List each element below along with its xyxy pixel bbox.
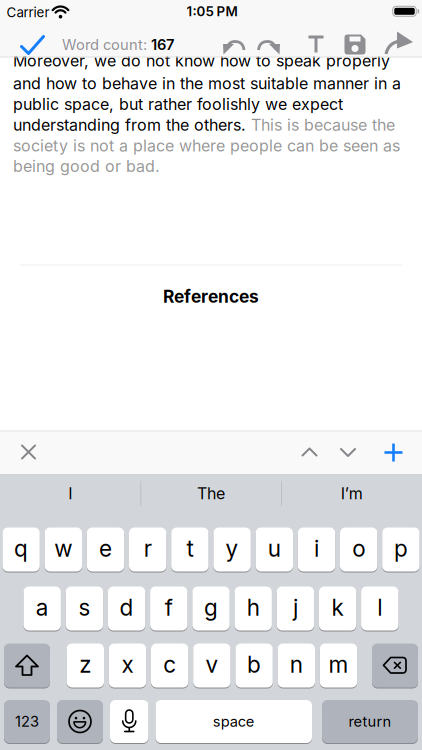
- button[interactable]: f: [150, 586, 187, 630]
- staticText: i: [314, 535, 319, 562]
- staticText: s: [78, 594, 90, 621]
- staticText: society is not a place where people can …: [13, 136, 400, 155]
- button[interactable]: Done: [18, 31, 48, 59]
- staticText: r: [144, 535, 152, 562]
- button[interactable]: s: [66, 586, 103, 630]
- button[interactable]: n: [278, 643, 315, 687]
- staticText: I’m: [341, 484, 363, 503]
- button[interactable]: Text style: [306, 34, 326, 54]
- button[interactable]: Delete: [372, 643, 418, 687]
- staticText: y: [226, 535, 239, 562]
- button[interactable]: z: [67, 643, 104, 687]
- button[interactable]: 123: [4, 700, 50, 743]
- button[interactable]: Save: [343, 33, 367, 55]
- button[interactable]: a: [23, 586, 61, 630]
- button[interactable]: j: [277, 586, 314, 630]
- staticText: and how to behave in the most suitable m…: [13, 74, 401, 93]
- staticText: Carrier: [6, 4, 49, 20]
- staticText: b: [247, 651, 261, 678]
- button[interactable]: e: [87, 527, 124, 571]
- button[interactable]: Next: [340, 448, 356, 457]
- staticText: return: [348, 713, 391, 730]
- button[interactable]: p: [382, 527, 420, 571]
- button[interactable]: I’m: [287, 474, 417, 512]
- staticText: e: [99, 535, 112, 562]
- staticText: k: [332, 594, 344, 621]
- button[interactable]: m: [320, 643, 357, 687]
- button[interactable]: Dictate: [110, 700, 148, 743]
- staticText: w: [54, 535, 72, 562]
- staticText: public space, but rather foolishly we ex…: [13, 95, 343, 114]
- button[interactable]: x: [109, 643, 146, 687]
- button[interactable]: k: [319, 586, 356, 630]
- button[interactable]: t: [171, 527, 209, 571]
- button[interactable]: u: [256, 527, 293, 571]
- button[interactable]: c: [151, 643, 188, 687]
- staticText: t: [186, 535, 193, 562]
- staticText: Moreover, we do not know how to speak pr…: [13, 51, 390, 70]
- staticText: v: [205, 651, 218, 678]
- staticText: Word count:: [62, 36, 151, 53]
- staticText: g: [204, 594, 218, 621]
- button[interactable]: Undo: [219, 31, 249, 57]
- staticText: l: [377, 594, 382, 621]
- staticText: f: [165, 594, 173, 621]
- staticText: m: [328, 651, 348, 678]
- staticText: d: [120, 594, 134, 621]
- button[interactable]: Redo: [254, 31, 284, 57]
- button[interactable]: return: [322, 700, 418, 743]
- button[interactable]: y: [213, 527, 251, 571]
- staticText: j: [293, 594, 298, 621]
- button[interactable]: Emoji: [57, 700, 103, 743]
- button[interactable]: I: [5, 474, 135, 512]
- button[interactable]: w: [45, 527, 82, 571]
- button[interactable]: Dismiss keyboard: [21, 444, 36, 459]
- staticText: being good or bad.: [13, 157, 160, 176]
- staticText: h: [247, 594, 260, 621]
- staticText: q: [14, 535, 28, 562]
- button[interactable]: v: [193, 643, 231, 687]
- staticText: This is because the: [251, 115, 395, 134]
- button[interactable]: r: [129, 527, 166, 571]
- staticText: 123: [15, 713, 39, 730]
- button[interactable]: Shift: [4, 643, 50, 687]
- staticText: x: [121, 651, 133, 678]
- staticText: z: [79, 651, 91, 678]
- button[interactable]: Previous: [301, 447, 317, 456]
- button[interactable]: b: [235, 643, 273, 687]
- staticText: understanding from the others.: [13, 115, 251, 134]
- staticText: n: [290, 651, 303, 678]
- button[interactable]: i: [298, 527, 335, 571]
- staticText: 167: [151, 36, 174, 53]
- staticText: The: [197, 484, 225, 503]
- button[interactable]: space: [155, 700, 312, 743]
- staticText: References: [163, 286, 259, 307]
- staticText: o: [352, 535, 365, 562]
- button[interactable]: g: [192, 586, 230, 630]
- staticText: I: [68, 484, 72, 503]
- staticText: space: [213, 713, 255, 730]
- button[interactable]: l: [361, 586, 398, 630]
- button[interactable]: d: [108, 586, 145, 630]
- button[interactable]: The: [146, 474, 276, 512]
- button[interactable]: Add: [384, 443, 402, 461]
- staticText: u: [268, 535, 281, 562]
- button[interactable]: q: [2, 527, 40, 571]
- button[interactable]: h: [234, 586, 272, 630]
- staticText: 1:05 PM: [186, 4, 237, 19]
- staticText: a: [36, 594, 49, 621]
- button[interactable]: Share: [385, 31, 413, 55]
- staticText: c: [163, 651, 176, 678]
- staticText: p: [394, 535, 408, 562]
- button[interactable]: o: [340, 527, 377, 571]
